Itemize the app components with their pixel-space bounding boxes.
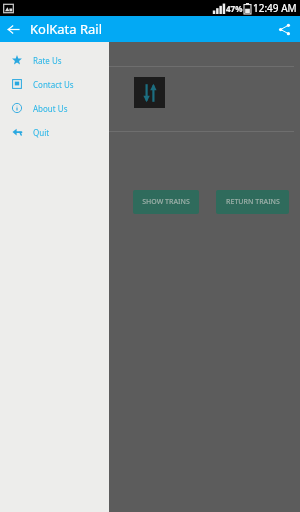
staticText: 47% bbox=[226, 3, 243, 14]
button[interactable]: Contact Us bbox=[0, 72, 109, 96]
button[interactable]: Share bbox=[271, 16, 297, 42]
staticText: About Us bbox=[33, 103, 68, 114]
staticText: Rate Us bbox=[33, 55, 62, 66]
staticText: Contact Us bbox=[33, 79, 74, 90]
staticText: RETURN TRAINS bbox=[226, 197, 280, 207]
staticText: 12:49 AM bbox=[253, 1, 297, 15]
button[interactable]: SHOW TRAINS bbox=[133, 190, 199, 214]
button[interactable]: Rate Us bbox=[0, 48, 109, 72]
button[interactable]: RETURN TRAINS bbox=[216, 190, 289, 214]
staticText: KolKata Rail bbox=[30, 20, 103, 38]
staticText: SHOW TRAINS bbox=[142, 197, 190, 207]
button[interactable]: About Us bbox=[0, 96, 109, 120]
button[interactable]: Swap stations bbox=[134, 77, 165, 108]
button[interactable]: Quit bbox=[0, 120, 109, 144]
button[interactable]: Back bbox=[0, 16, 26, 42]
staticText: Quit bbox=[33, 127, 50, 138]
